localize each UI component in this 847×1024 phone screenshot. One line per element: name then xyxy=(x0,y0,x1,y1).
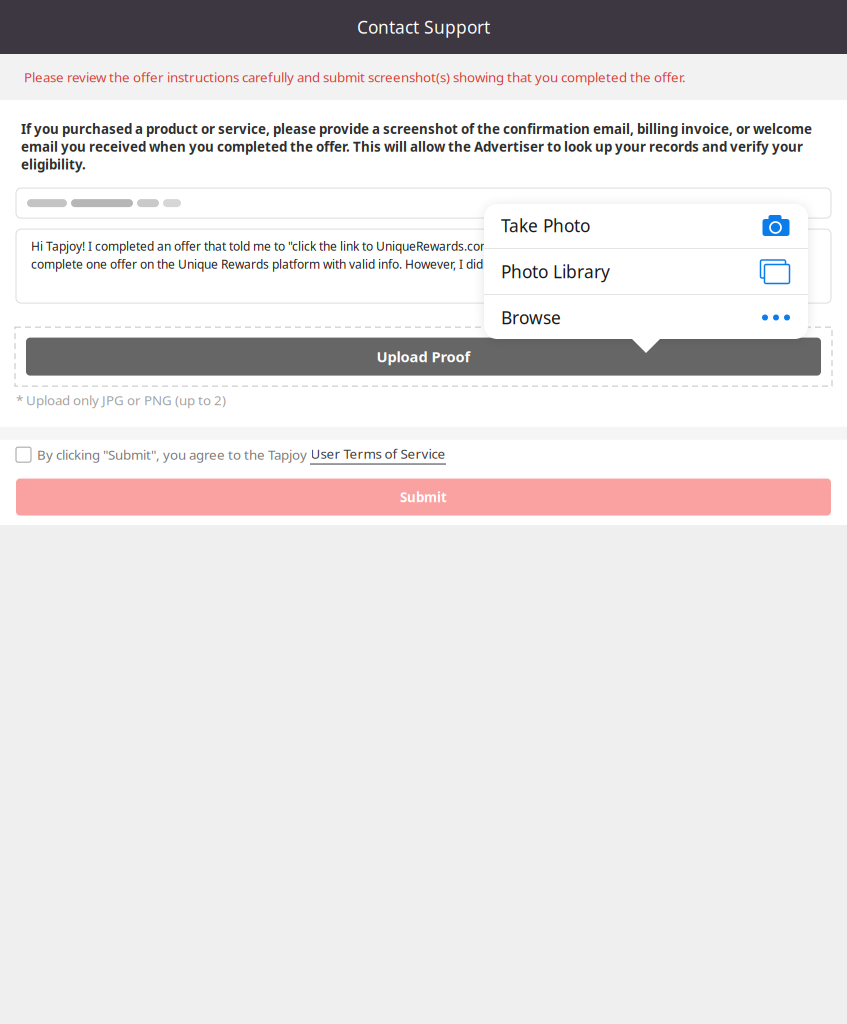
button[interactable]: User Terms of Service xyxy=(310,445,446,464)
button[interactable]: Upload Proof xyxy=(15,338,832,376)
staticText: If you purchased a product or service, p… xyxy=(21,120,812,173)
button[interactable]: Submit xyxy=(16,478,831,515)
staticText: Photo Library xyxy=(501,260,610,283)
staticText: complete one offer on the Unique Rewards… xyxy=(31,256,585,272)
staticText: Take Photo xyxy=(501,214,590,237)
button[interactable]: Photo Library xyxy=(484,249,808,294)
button[interactable]: Take Photo xyxy=(484,203,808,248)
staticText: Hi Tapjoy! I completed an offer that tol… xyxy=(31,238,562,254)
staticText: Please review the offer instructions car… xyxy=(24,68,686,86)
staticText: User Terms of Service xyxy=(310,445,445,462)
staticText: By clicking "Submit", you agree to the T… xyxy=(31,446,310,463)
staticText: * Upload only JPG or PNG (up to 2) xyxy=(16,391,226,409)
staticText: Upload Proof xyxy=(376,347,470,366)
button[interactable] xyxy=(16,447,31,462)
button[interactable]: Browse xyxy=(484,295,808,340)
staticText: Contact Support xyxy=(357,15,490,38)
staticText: Submit xyxy=(400,488,447,506)
staticText: Browse xyxy=(501,306,561,329)
